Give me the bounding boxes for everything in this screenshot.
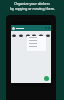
button[interactable]: Sticker xyxy=(31,32,37,38)
button[interactable]: Sticker xyxy=(45,32,51,38)
button[interactable]: Sticker xyxy=(38,32,44,38)
button[interactable]: Sticker xyxy=(25,32,31,38)
staticText: by copying or moving them. xyxy=(10,6,55,11)
button[interactable] xyxy=(29,46,44,47)
button[interactable]: Sticker xyxy=(11,32,17,38)
button[interactable] xyxy=(29,37,44,38)
button[interactable]: Search xyxy=(11,25,51,31)
button[interactable]: Sticker xyxy=(18,32,24,38)
button[interactable]: Add xyxy=(44,76,49,81)
button[interactable] xyxy=(29,43,44,44)
button[interactable] xyxy=(29,40,44,41)
staticText: Organize your stickers xyxy=(14,1,50,6)
